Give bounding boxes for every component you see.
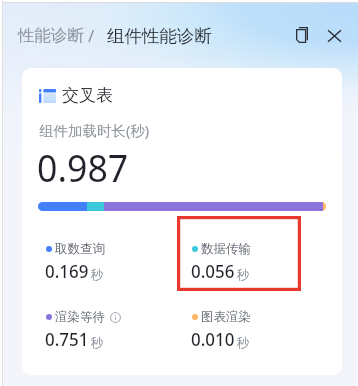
staticText: 取数查询: [55, 241, 105, 257]
button[interactable]: 数据传输: [192, 240, 310, 286]
staticText: 交叉表: [62, 85, 113, 106]
staticText: 渲染等待: [55, 309, 105, 325]
staticText: 数据传输: [201, 241, 251, 257]
button[interactable]: Copy: [288, 21, 316, 49]
staticText: 0.987: [37, 140, 128, 193]
staticText: 秒: [91, 335, 104, 351]
staticText: 组件性能诊断: [107, 25, 212, 47]
staticText: 0.010: [191, 327, 235, 352]
staticText: 秒: [237, 267, 250, 283]
button[interactable]: 图表渲染: [192, 308, 310, 354]
staticText: /: [88, 24, 95, 47]
staticText: 组件加载时长(秒): [39, 120, 150, 140]
staticText: 性能诊断: [18, 25, 84, 46]
staticText: 秒: [237, 335, 250, 351]
staticText: 0.751: [45, 327, 89, 352]
staticText: 0.056: [191, 259, 235, 284]
staticText: 图表渲染: [201, 309, 251, 325]
button[interactable]: 性能诊断: [18, 25, 84, 46]
staticText: 0.169: [45, 259, 89, 284]
button[interactable]: 渲染等待: [46, 308, 164, 354]
staticText: 秒: [91, 267, 104, 283]
button[interactable]: 取数查询: [46, 240, 164, 286]
button[interactable]: Close: [320, 22, 348, 50]
